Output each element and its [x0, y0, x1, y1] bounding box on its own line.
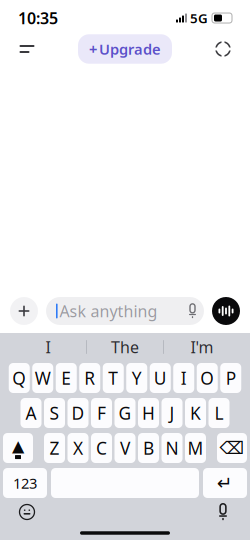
button[interactable]: Q [9, 363, 30, 393]
staticText: Z [49, 436, 59, 459]
button[interactable]: W [32, 363, 53, 393]
staticText: ⌫ [219, 438, 244, 458]
staticText: E [61, 366, 71, 389]
staticText: Ask anything [60, 300, 158, 322]
staticText: I'm [190, 336, 213, 358]
button[interactable]: U [150, 363, 171, 393]
button[interactable]: Z [44, 433, 65, 463]
staticText: B [143, 436, 154, 459]
staticText: Upgrade [99, 39, 161, 59]
staticText: D [71, 401, 84, 424]
staticText: 5G [190, 9, 208, 27]
button[interactable]: V [114, 433, 135, 463]
staticText: R [84, 366, 95, 389]
staticText: ▲ [12, 437, 24, 455]
button[interactable]: M [185, 433, 206, 463]
staticText: L [214, 401, 223, 424]
button[interactable]: Delete [217, 433, 247, 463]
staticText: F [97, 401, 106, 424]
staticText: The [111, 336, 139, 358]
button[interactable]: J [161, 398, 182, 428]
button[interactable]: A [20, 398, 41, 428]
button[interactable]: Add attachment [10, 297, 38, 325]
button[interactable]: Return [203, 468, 247, 498]
staticText: C [96, 436, 107, 459]
button[interactable]: B [138, 433, 159, 463]
staticText: W [35, 366, 51, 389]
staticText: J [169, 401, 174, 424]
staticText: O [200, 366, 214, 389]
staticText: U [154, 366, 167, 389]
button[interactable]: I'm [164, 334, 240, 360]
button[interactable]: Dictation [206, 499, 240, 525]
staticText: ↵ [217, 472, 233, 494]
staticText: 123 [13, 473, 37, 493]
button[interactable]: G [114, 398, 135, 428]
button[interactable]: R [79, 363, 100, 393]
staticText: A [25, 401, 36, 424]
staticText: K [190, 401, 201, 424]
button[interactable]: L [208, 398, 229, 428]
button[interactable]: + [78, 34, 172, 64]
button[interactable]: 123 [3, 468, 47, 498]
button[interactable]: The [87, 334, 163, 360]
staticText: H [142, 401, 155, 424]
button[interactable]: S [44, 398, 65, 428]
staticText: G [118, 401, 131, 424]
button[interactable]: Shift [3, 433, 33, 463]
staticText: X [73, 436, 83, 459]
staticText: N [165, 436, 178, 459]
button[interactable]: Ask anything [46, 297, 204, 325]
button[interactable]: T [103, 363, 124, 393]
button[interactable]: Voice mode [212, 297, 240, 325]
button[interactable]: C [91, 433, 112, 463]
button[interactable]: X [67, 433, 88, 463]
staticText: T [108, 366, 118, 389]
button[interactable]: Emoji [10, 499, 44, 525]
staticText: S [49, 401, 59, 424]
button[interactable]: D [67, 398, 88, 428]
button[interactable]: N [161, 433, 182, 463]
button[interactable]: H [138, 398, 159, 428]
staticText: P [226, 366, 236, 389]
button[interactable]: K [185, 398, 206, 428]
button[interactable]: Menu [12, 35, 42, 63]
button[interactable]: I [173, 363, 194, 393]
staticText: I [45, 336, 50, 358]
button[interactable]: O [197, 363, 218, 393]
staticText: 10:35 [18, 7, 58, 29]
button[interactable]: P [220, 363, 241, 393]
button[interactable]: Y [126, 363, 147, 393]
staticText: M [187, 436, 203, 459]
staticText: + [89, 39, 97, 59]
button[interactable]: I [10, 334, 86, 360]
staticText: V [120, 436, 130, 459]
button[interactable]: New chat [208, 35, 238, 63]
staticText: Y [132, 366, 142, 389]
button[interactable]: E [56, 363, 77, 393]
button[interactable]: F [91, 398, 112, 428]
staticText: Q [12, 366, 26, 389]
staticText: I [181, 366, 187, 389]
